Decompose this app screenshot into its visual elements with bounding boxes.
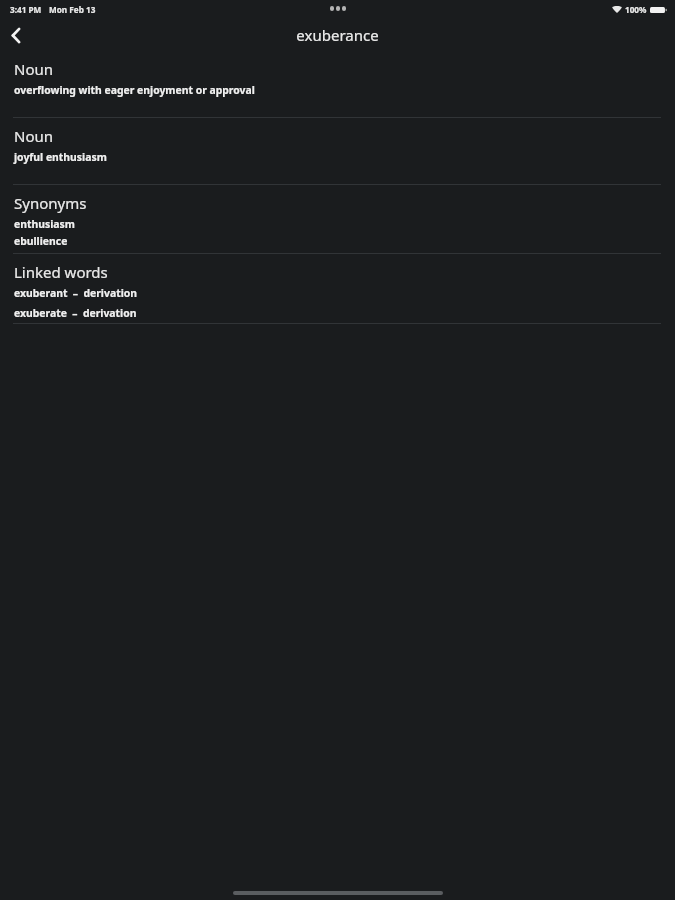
staticText: Synonyms <box>14 193 87 213</box>
button[interactable]: Back <box>1 20 31 50</box>
staticText: joyful enthusiasm <box>14 150 107 164</box>
staticText: Linked words <box>14 262 108 282</box>
staticText: overflowing with eager enjoyment or appr… <box>14 83 255 97</box>
button[interactable]: Linked words <box>0 254 675 324</box>
staticText: Mon Feb 13 <box>49 4 96 15</box>
staticText: exuberant – derivation <box>14 286 137 300</box>
staticText: ebullience <box>14 234 68 248</box>
staticText: enthusiasm <box>14 217 75 231</box>
staticText: 100% <box>625 4 647 15</box>
staticText: Noun <box>14 126 54 146</box>
button[interactable]: Synonyms <box>0 185 675 254</box>
button[interactable]: Noun <box>0 118 675 185</box>
staticText: Noun <box>14 59 54 79</box>
staticText: 3:41 PM <box>10 4 42 15</box>
staticText: exuberate – derivation <box>14 306 137 320</box>
staticText: exuberance <box>296 25 379 45</box>
button[interactable]: Noun <box>0 51 675 118</box>
